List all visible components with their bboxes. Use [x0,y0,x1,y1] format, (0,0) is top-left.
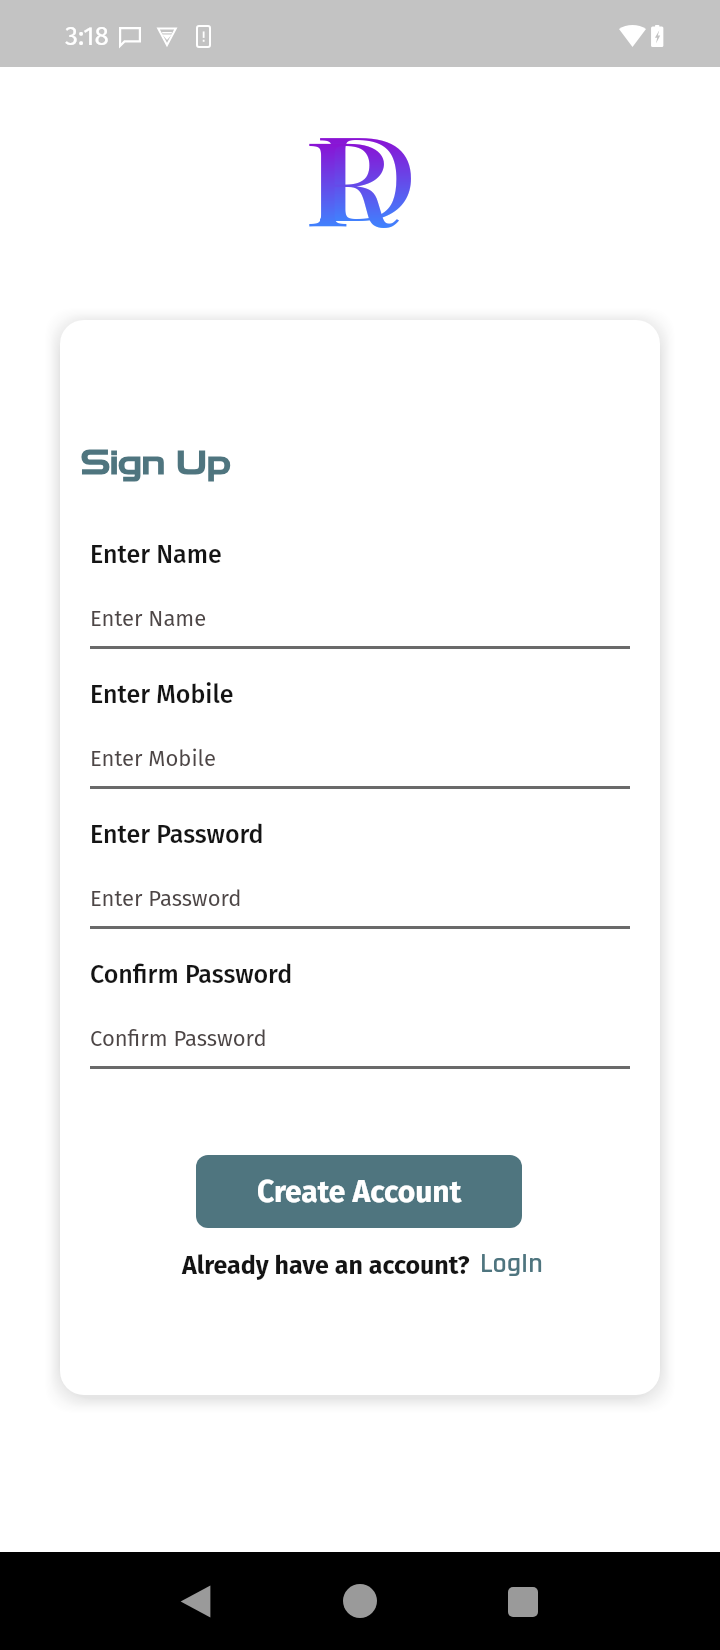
button[interactable]: Home [320,1561,400,1641]
staticText: Confirm Password [90,1025,267,1051]
staticText: Enter Password [90,885,242,911]
staticText: 3:18 [65,21,109,52]
staticText: D [314,95,420,251]
staticText: Enter Mobile [90,745,216,771]
staticText: Already have an account? [182,1251,470,1281]
button[interactable]: Back [155,1560,235,1642]
staticText: Enter Name [90,605,207,631]
staticText: R [303,100,397,255]
staticText: Enter Name [90,540,222,570]
staticText: Create Account [257,1174,462,1210]
staticText: Sign Up [81,444,231,482]
button[interactable]: Recent apps [483,1562,563,1642]
button[interactable]: Create Account [196,1155,522,1228]
staticText: Enter Password [90,820,264,850]
staticText: Confirm Password [90,960,293,990]
staticText: LogIn [480,1246,543,1282]
button[interactable]: LogIn [480,1246,543,1282]
staticText: Enter Mobile [90,680,234,710]
